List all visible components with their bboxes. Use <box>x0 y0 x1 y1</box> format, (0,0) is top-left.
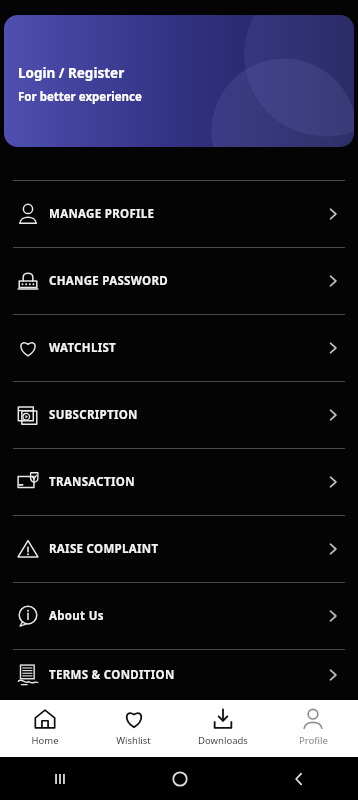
button[interactable]: Profile <box>268 700 358 757</box>
button[interactable]: Downloads <box>178 700 268 757</box>
staticText: Wishlist <box>116 734 151 747</box>
button[interactable]: Recents <box>0 757 120 800</box>
button[interactable]: Home <box>120 757 239 800</box>
staticText: Profile <box>299 734 328 747</box>
staticText: About Us <box>49 608 104 624</box>
staticText: WATCHLIST <box>49 340 116 356</box>
button[interactable]: CHANGE PASSWORD <box>0 248 358 314</box>
staticText: MANAGE PROFILE <box>49 206 155 222</box>
button[interactable]: WATCHLIST <box>0 315 358 381</box>
button[interactable]: TRANSACTION <box>0 449 358 515</box>
button[interactable]: Home <box>0 700 89 757</box>
button[interactable]: Back <box>239 757 358 800</box>
staticText: Home <box>31 734 59 747</box>
staticText: TRANSACTION <box>49 474 135 490</box>
button[interactable]: MANAGE PROFILE <box>0 181 358 247</box>
staticText: TERMS & CONDITION <box>49 667 175 683</box>
button[interactable]: SUBSCRIPTION <box>0 382 358 448</box>
staticText: Downloads <box>198 734 248 747</box>
staticText: CHANGE PASSWORD <box>49 273 169 289</box>
button[interactable]: About Us <box>0 583 358 649</box>
staticText: SUBSCRIPTION <box>49 407 138 423</box>
button[interactable]: Login / Register <box>4 15 354 147</box>
staticText: Login / Register <box>18 64 125 82</box>
staticText: For better experience <box>18 89 142 105</box>
staticText: RAISE COMPLAINT <box>49 541 159 557</box>
button[interactable]: RAISE COMPLAINT <box>0 516 358 582</box>
button[interactable]: Wishlist <box>89 700 178 757</box>
button[interactable]: TERMS & CONDITION <box>0 650 358 700</box>
